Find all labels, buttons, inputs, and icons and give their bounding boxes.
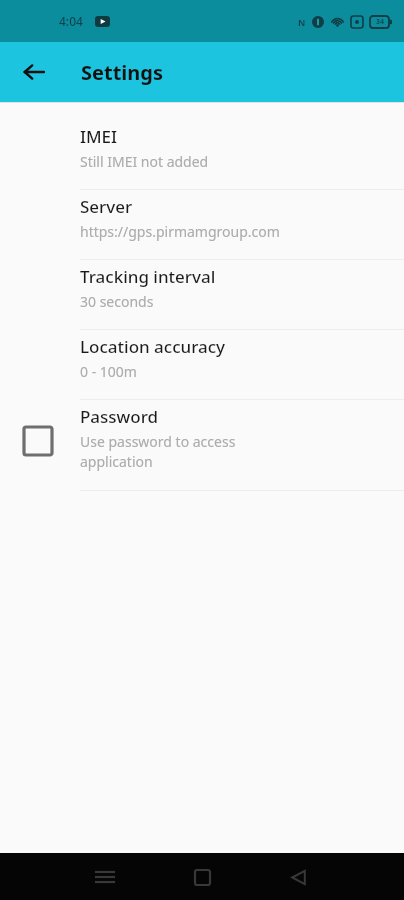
staticText: Location accuracy xyxy=(80,335,226,358)
staticText: Use password to access application xyxy=(80,432,236,472)
button[interactable]: Back xyxy=(12,50,56,94)
staticText: 30 seconds xyxy=(80,292,154,311)
button[interactable]: Server xyxy=(0,190,404,259)
staticText: https://gps.pirmamgroup.com xyxy=(80,222,280,241)
button[interactable]: Home xyxy=(179,854,225,900)
button[interactable]: Recent apps xyxy=(82,854,128,900)
staticText: Password xyxy=(80,405,159,428)
staticText: 34 xyxy=(376,17,385,27)
staticText: Settings xyxy=(81,59,163,86)
button[interactable]: IMEI xyxy=(0,120,404,189)
button[interactable]: Use password checkbox xyxy=(0,400,404,490)
staticText: Server xyxy=(80,195,133,218)
staticText: 0 - 100m xyxy=(80,362,137,381)
button[interactable]: Back xyxy=(275,854,321,900)
other: Use password checkbox xyxy=(24,427,52,455)
button[interactable]: Location accuracy xyxy=(0,330,404,399)
button[interactable]: Tracking interval xyxy=(0,260,404,329)
staticText: Still IMEI not added xyxy=(80,152,209,171)
staticText: 4:04 xyxy=(59,13,83,29)
staticText: IMEI xyxy=(80,125,118,148)
staticText: N xyxy=(298,16,306,28)
staticText: Tracking interval xyxy=(80,265,216,288)
